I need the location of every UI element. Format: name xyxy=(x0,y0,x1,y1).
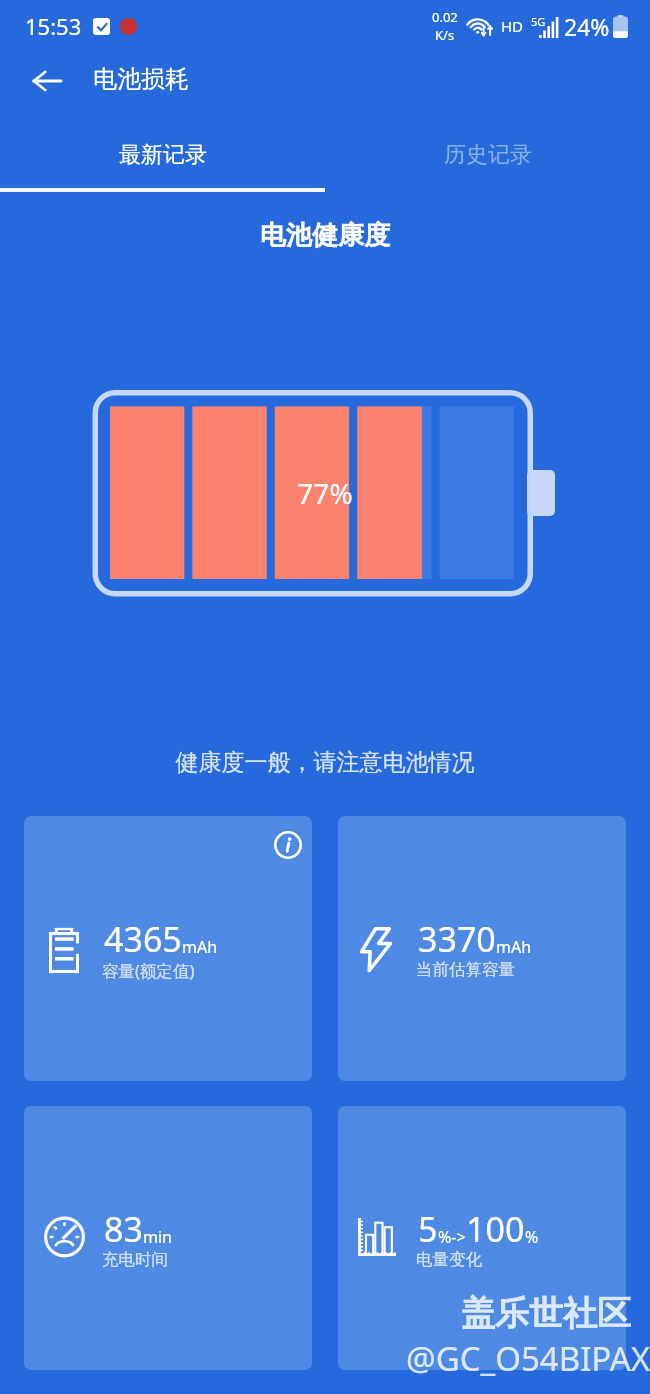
staticText: 当前估算容量 xyxy=(416,959,515,980)
staticText: 最新记录 xyxy=(119,141,207,169)
staticText: 0.02 xyxy=(432,8,458,26)
button[interactable]: Info xyxy=(273,830,303,860)
staticText: 3370 xyxy=(418,916,496,962)
staticText: % xyxy=(525,1226,539,1248)
staticText: 83 xyxy=(104,1206,143,1252)
staticText: 电池健康度 xyxy=(0,219,650,252)
staticText: K/s xyxy=(435,26,455,44)
staticText: min xyxy=(143,1226,172,1248)
staticText: mAh xyxy=(182,936,218,958)
staticText: 5 xyxy=(418,1206,438,1252)
staticText: 充电时间 xyxy=(102,1249,168,1270)
staticText: 77% xyxy=(0,474,650,512)
button[interactable]: 最新记录 xyxy=(0,118,325,192)
staticText: HD xyxy=(501,16,524,36)
staticText: 容量(额定值) xyxy=(102,959,195,982)
staticText: 5G xyxy=(531,14,546,29)
staticText: 4365 xyxy=(104,916,182,962)
staticText: 24% xyxy=(564,11,610,42)
button[interactable]: 83 xyxy=(24,1106,312,1370)
staticText: 盖乐世社区 xyxy=(461,1292,631,1335)
staticText: 100 xyxy=(466,1206,525,1252)
staticText: 电池损耗 xyxy=(93,64,189,94)
button[interactable]: 5 xyxy=(338,1106,626,1370)
staticText: %-> xyxy=(438,1226,466,1248)
staticText: 15:53 xyxy=(25,11,82,41)
button[interactable]: 3370 xyxy=(338,816,626,1081)
button[interactable]: Back xyxy=(18,52,76,110)
staticText: 历史记录 xyxy=(444,141,532,169)
button[interactable]: Info xyxy=(24,816,312,1081)
staticText: @GC_O54BIPAX xyxy=(406,1336,650,1381)
button[interactable]: 历史记录 xyxy=(325,118,650,192)
staticText: mAh xyxy=(496,936,532,958)
staticText: 电量变化 xyxy=(416,1249,482,1270)
staticText: 健康度一般，请注意电池情况 xyxy=(0,748,650,777)
